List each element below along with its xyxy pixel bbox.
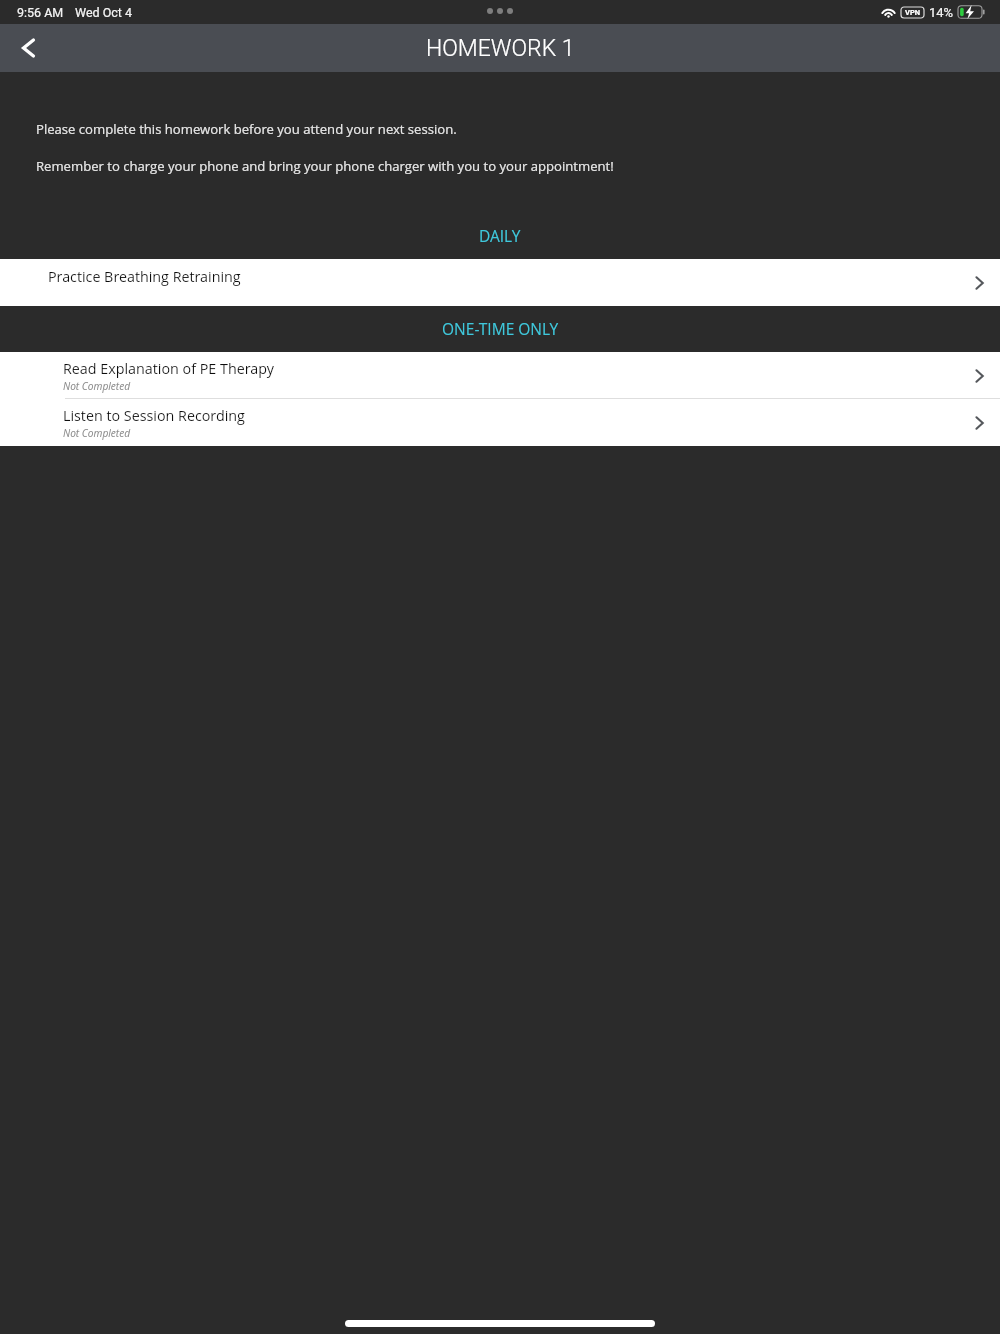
button[interactable]: Read Explanation of PE Therapy	[0, 352, 1000, 399]
staticText: Not Completed	[63, 379, 131, 393]
button[interactable]: Practice Breathing Retraining	[0, 259, 1000, 306]
staticText: VPN	[905, 8, 921, 17]
staticText: Remember to charge your phone and bring …	[36, 157, 614, 175]
staticText: ONE-TIME ONLY	[442, 318, 559, 339]
staticText: Not Completed	[63, 426, 131, 440]
staticText: 9:56 AM	[17, 5, 64, 20]
staticText: Please complete this homework before you…	[36, 120, 457, 138]
staticText: HOMEWORK 1	[426, 35, 575, 62]
button[interactable]: Back	[0, 24, 56, 72]
staticText: 14%	[929, 5, 954, 20]
staticText: Listen to Session Recording	[63, 406, 245, 425]
button[interactable]: Listen to Session Recording	[0, 399, 1000, 446]
staticText: Wed Oct 4	[75, 5, 133, 20]
staticText: Practice Breathing Retraining	[48, 267, 241, 286]
staticText: DAILY	[479, 225, 521, 246]
staticText: Read Explanation of PE Therapy	[63, 359, 274, 378]
